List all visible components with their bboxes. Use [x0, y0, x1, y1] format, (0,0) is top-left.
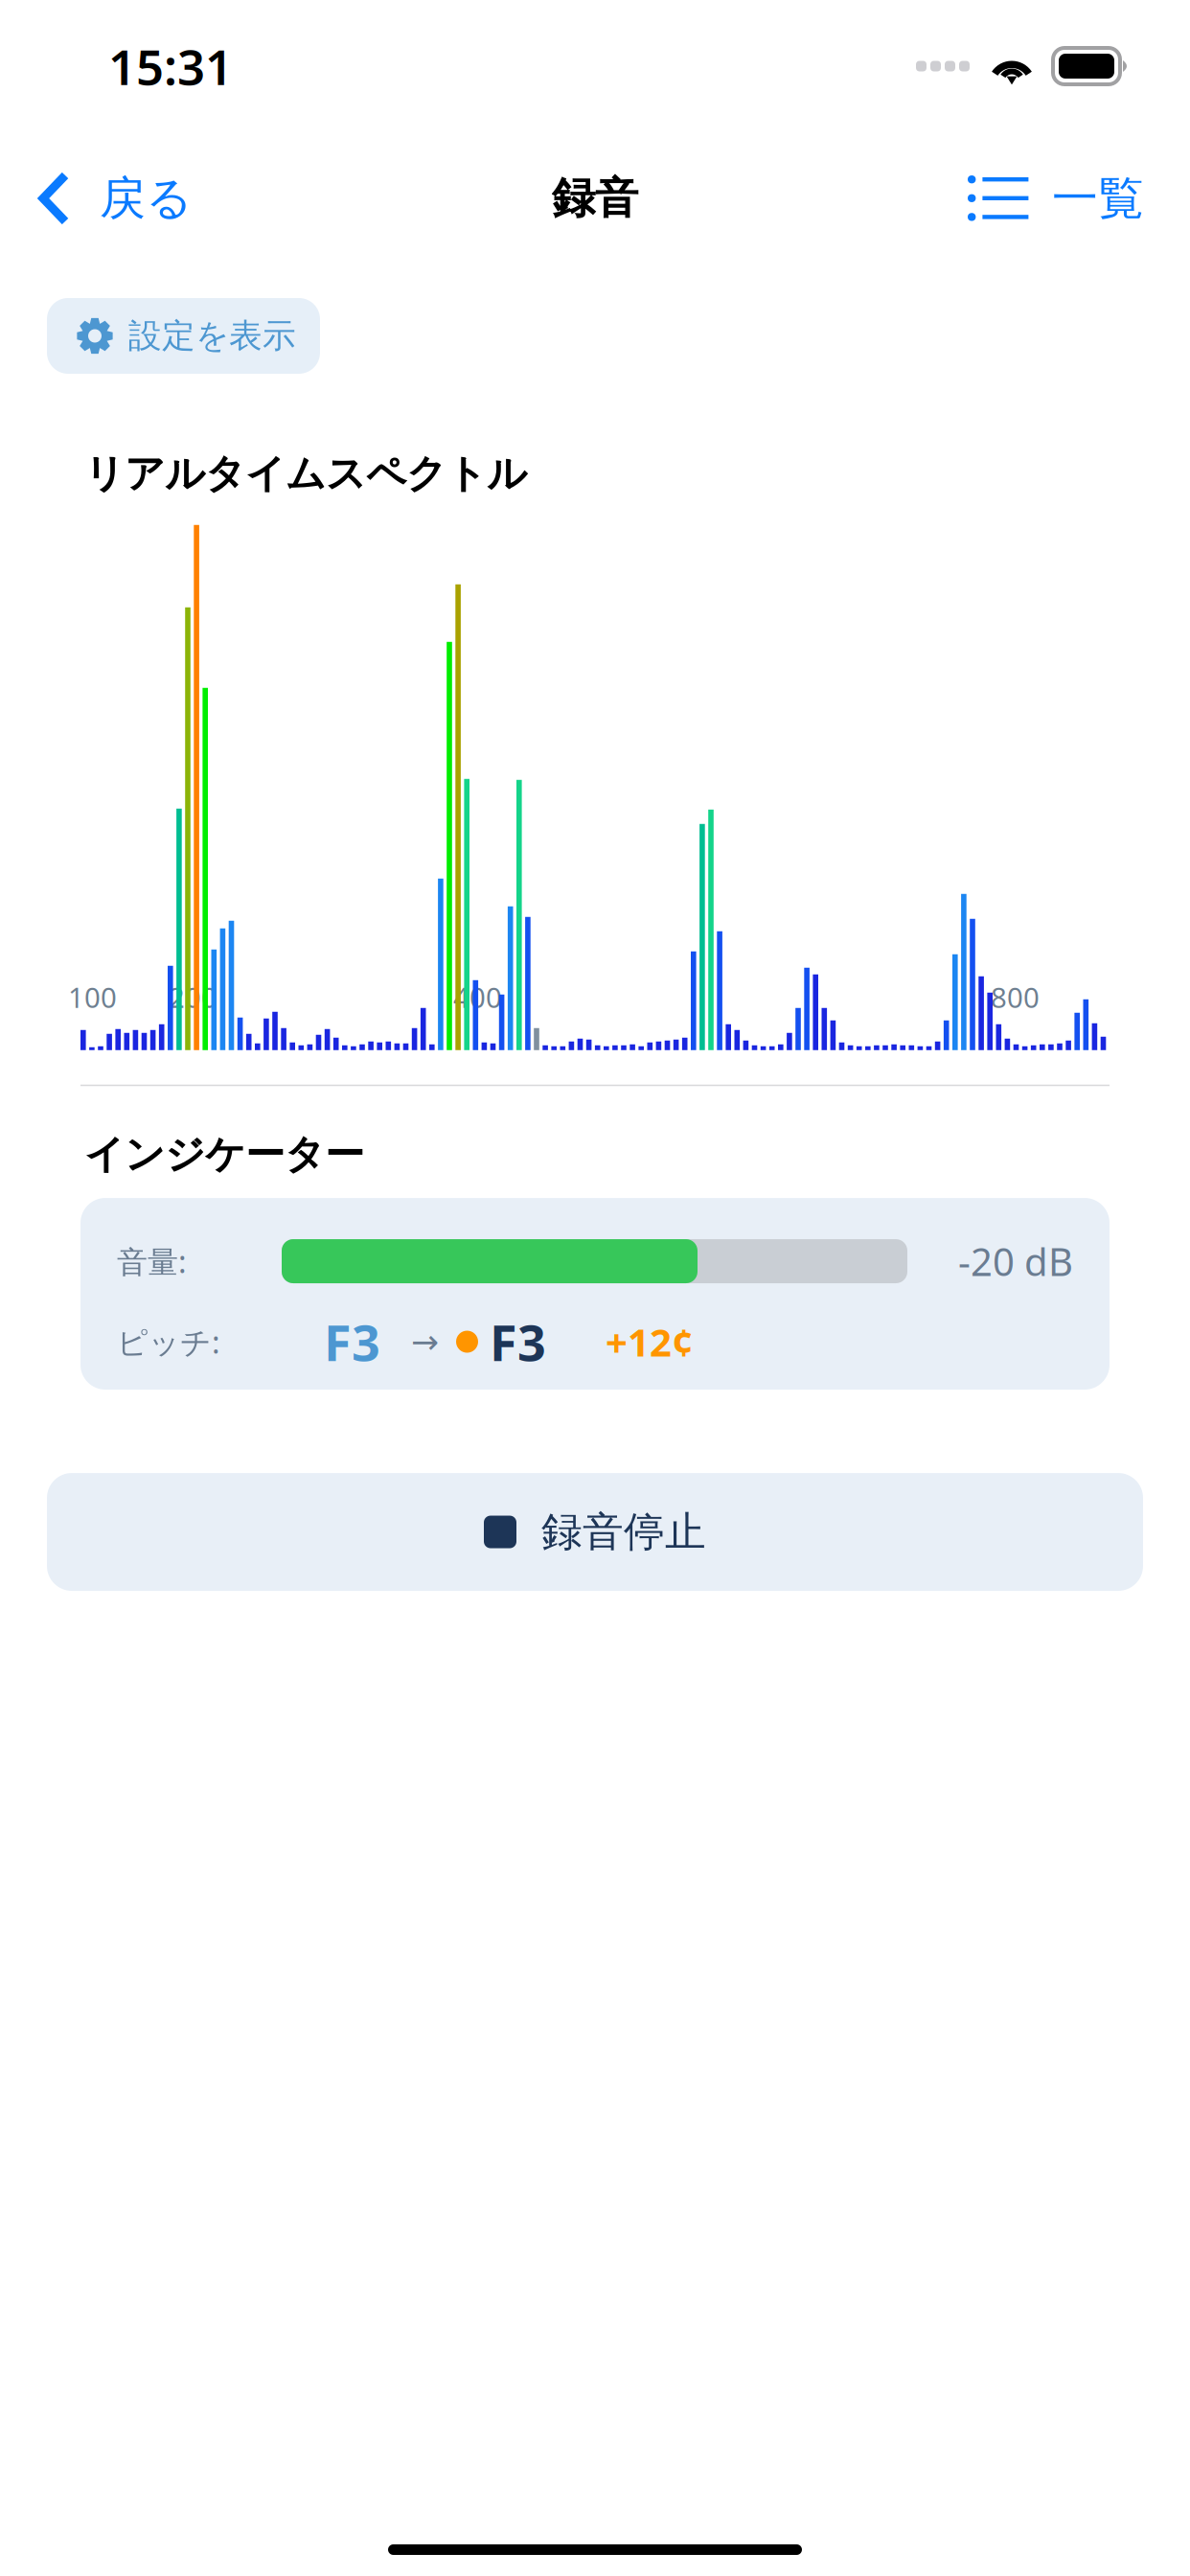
staticText: 100 [68, 978, 117, 1016]
staticText: 400 [453, 978, 502, 1016]
staticText: F3 [324, 1309, 380, 1375]
button[interactable]: 設定を表示 [47, 298, 320, 374]
staticText: 録音停止 [541, 1507, 706, 1557]
staticText: F3 [490, 1309, 546, 1375]
staticText: リアルタイムスペクトル [84, 449, 527, 498]
button[interactable]: 一覧 [952, 161, 1190, 236]
staticText: 800 [991, 978, 1040, 1016]
staticText: -20 dB [958, 1236, 1073, 1287]
staticText: → [411, 1323, 439, 1361]
staticText: 15:31 [108, 34, 233, 98]
button[interactable]: 録音停止 [47, 1473, 1143, 1591]
staticText: 一覧 [1052, 170, 1144, 227]
staticText: 戻る [100, 170, 193, 227]
staticText: ピッチ: [117, 1321, 220, 1362]
staticText: 設定を表示 [128, 315, 296, 356]
button[interactable]: 戻る [0, 161, 208, 236]
staticText: 音量: [117, 1241, 187, 1282]
staticText: +12¢ [606, 1316, 694, 1367]
staticText: 録音 [552, 172, 638, 225]
staticText: インジケーター [84, 1130, 364, 1179]
staticText: 200 [169, 978, 217, 1016]
